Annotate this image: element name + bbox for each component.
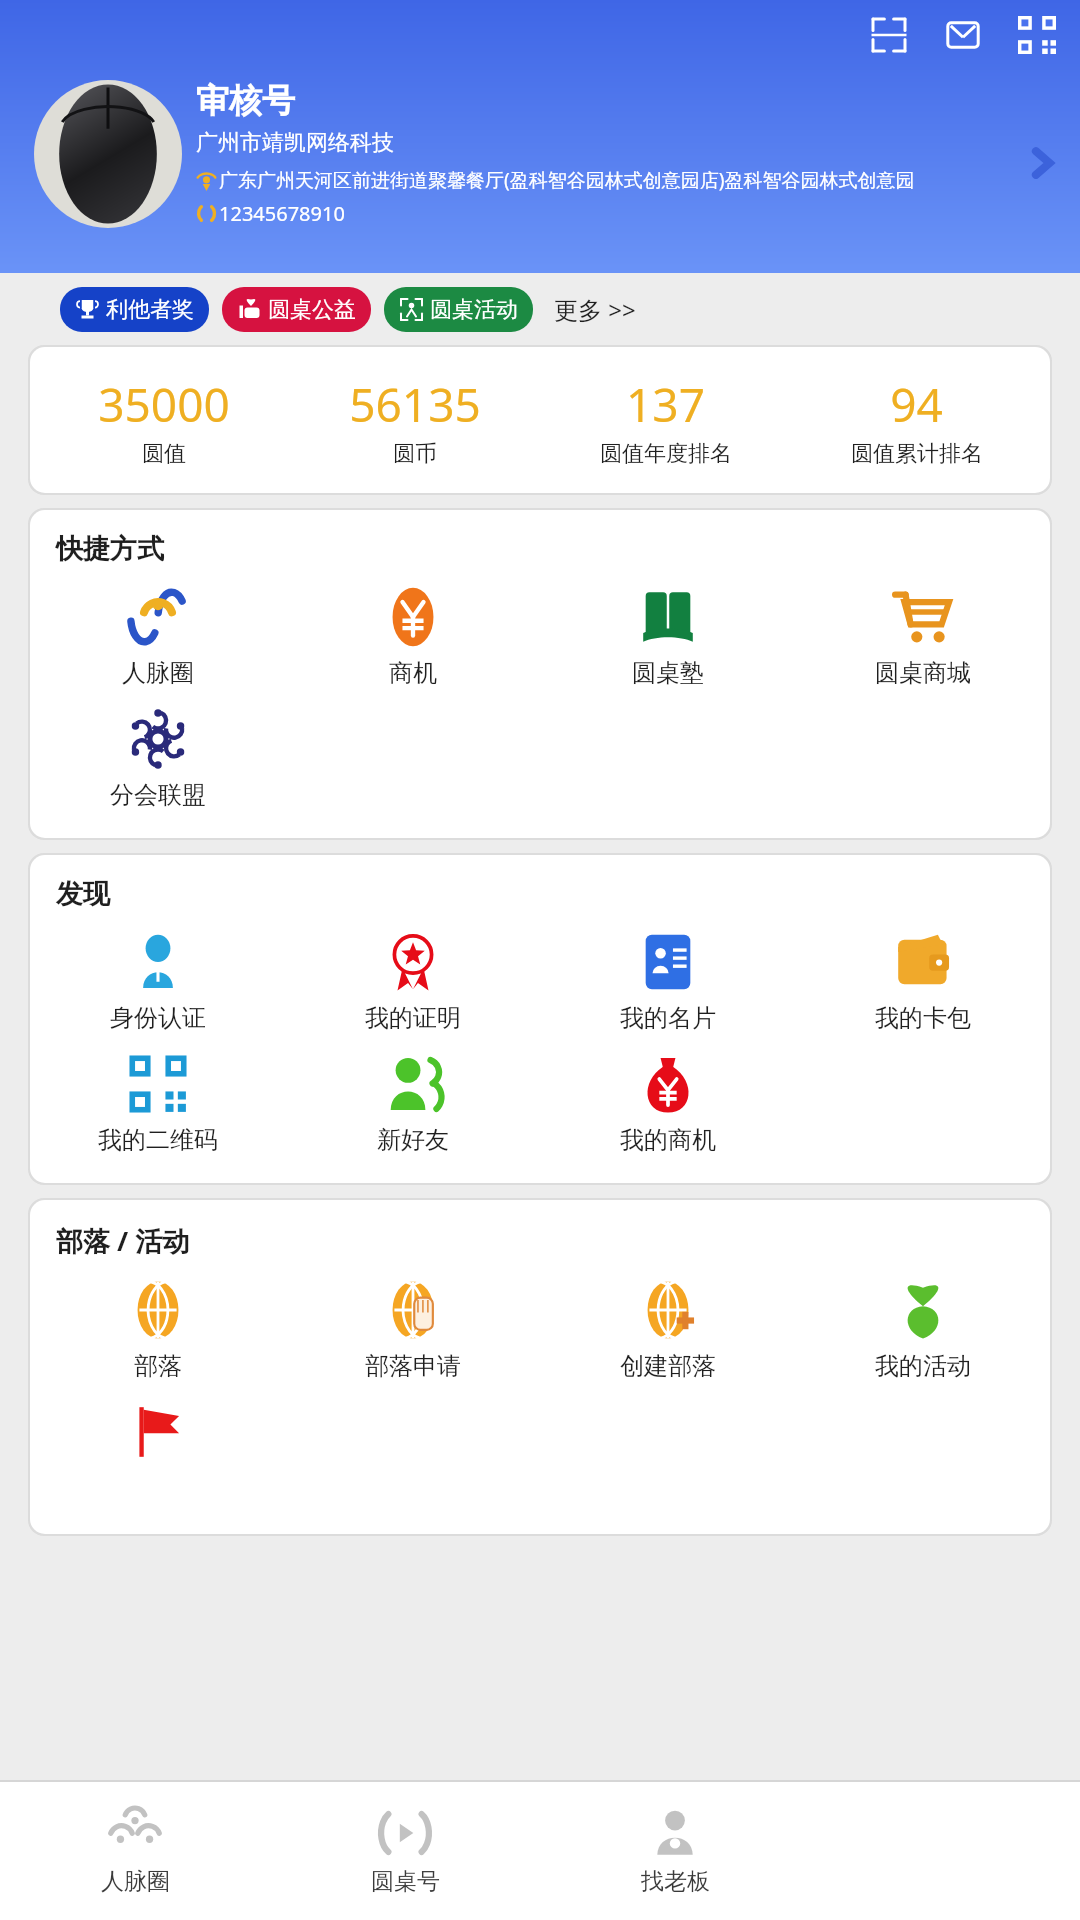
button[interactable]: 我的证明 [285,921,540,1043]
staticText: 商机 [389,658,437,688]
button[interactable]: 35000 [38,373,289,468]
staticText: 我的名片 [620,1003,716,1033]
button[interactable]: Messages [940,12,986,58]
staticText: 圆币 [393,440,437,468]
button[interactable]: 圆桌公益 [222,287,371,332]
button[interactable]: 身份认证 [30,921,285,1043]
staticText: 身份认证 [110,1003,206,1033]
button[interactable]: 新好友 [285,1043,540,1165]
staticText: 人脉圈 [101,1867,170,1896]
button[interactable]: 我的名片 [540,921,795,1043]
button[interactable]: 部落 [30,1269,285,1391]
button[interactable]: 分会联盟 [30,698,285,820]
staticText: 广东广州天河区前进街道聚馨餐厅(盈科智谷园林式创意园店)盈科智谷园林式创意园 [219,167,915,193]
button[interactable]: 圆桌号 [270,1782,540,1920]
staticText: 部落 [134,1351,182,1381]
button[interactable]: 我的活动 [795,1269,1050,1391]
button[interactable]: 56135 [289,373,540,468]
staticText: 圆桌号 [371,1867,440,1896]
button[interactable]: 利他者奖 [60,287,209,332]
staticText: 人脉圈 [122,658,194,688]
button[interactable]: 人脉圈 [0,1782,270,1920]
staticText: 更多 >> [554,293,636,326]
staticText: 圆值年度排名 [600,440,732,468]
staticText: 部落 / 活动 [56,1222,190,1259]
staticText: 56135 [349,373,481,436]
button[interactable]: 人脉圈 [30,576,285,698]
staticText: 圆值 [142,440,186,468]
staticText: 35000 [98,373,230,436]
staticText: 我的二维码 [98,1125,218,1155]
staticText: 圆桌商城 [875,658,971,688]
staticText: 找老板 [641,1867,710,1896]
button[interactable]: 商机 [285,576,540,698]
button[interactable]: 创建部落 [540,1269,795,1391]
staticText: 新好友 [377,1125,449,1155]
button[interactable]: 94 [791,373,1042,468]
staticText: 快捷方式 [56,532,164,566]
button[interactable]: Scan [866,12,912,58]
staticText: 我的证明 [365,1003,461,1033]
button[interactable]: 我的商机 [540,1043,795,1165]
button[interactable]: 部落申请 [285,1269,540,1391]
staticText: 137 [626,373,705,436]
button[interactable] [30,1391,285,1516]
button[interactable]: 找老板 [540,1782,810,1920]
button[interactable]: 圆桌塾 [540,576,795,698]
staticText: 创建部落 [620,1351,716,1381]
staticText: 广州市靖凯网络科技 [196,129,394,157]
staticText: 审核号 [196,80,295,122]
staticText: 我的活动 [875,1351,971,1381]
button[interactable]: 我的二维码 [30,1043,285,1165]
staticText: 圆桌塾 [632,658,704,688]
staticText: 12345678910 [219,200,345,227]
button[interactable]: QR code [1014,12,1060,58]
staticText: 圆桌活动 [430,296,518,324]
staticText: 94 [890,373,943,436]
staticText: 我的商机 [620,1125,716,1155]
button[interactable]: 我的卡包 [795,921,1050,1043]
staticText: 利他者奖 [106,296,194,324]
button[interactable]: 137 [540,373,791,468]
staticText: 我的卡包 [875,1003,971,1033]
staticText: 分会联盟 [110,780,206,810]
button[interactable]: Open profile [1014,135,1070,191]
button[interactable]: 圆桌活动 [384,287,533,332]
staticText: 部落申请 [365,1351,461,1381]
staticText: 圆值累计排名 [851,440,983,468]
staticText: 发现 [56,877,110,911]
button[interactable]: 更多 >> [550,289,640,330]
button[interactable]: 圆桌商城 [795,576,1050,698]
staticText: 圆桌公益 [268,296,356,324]
